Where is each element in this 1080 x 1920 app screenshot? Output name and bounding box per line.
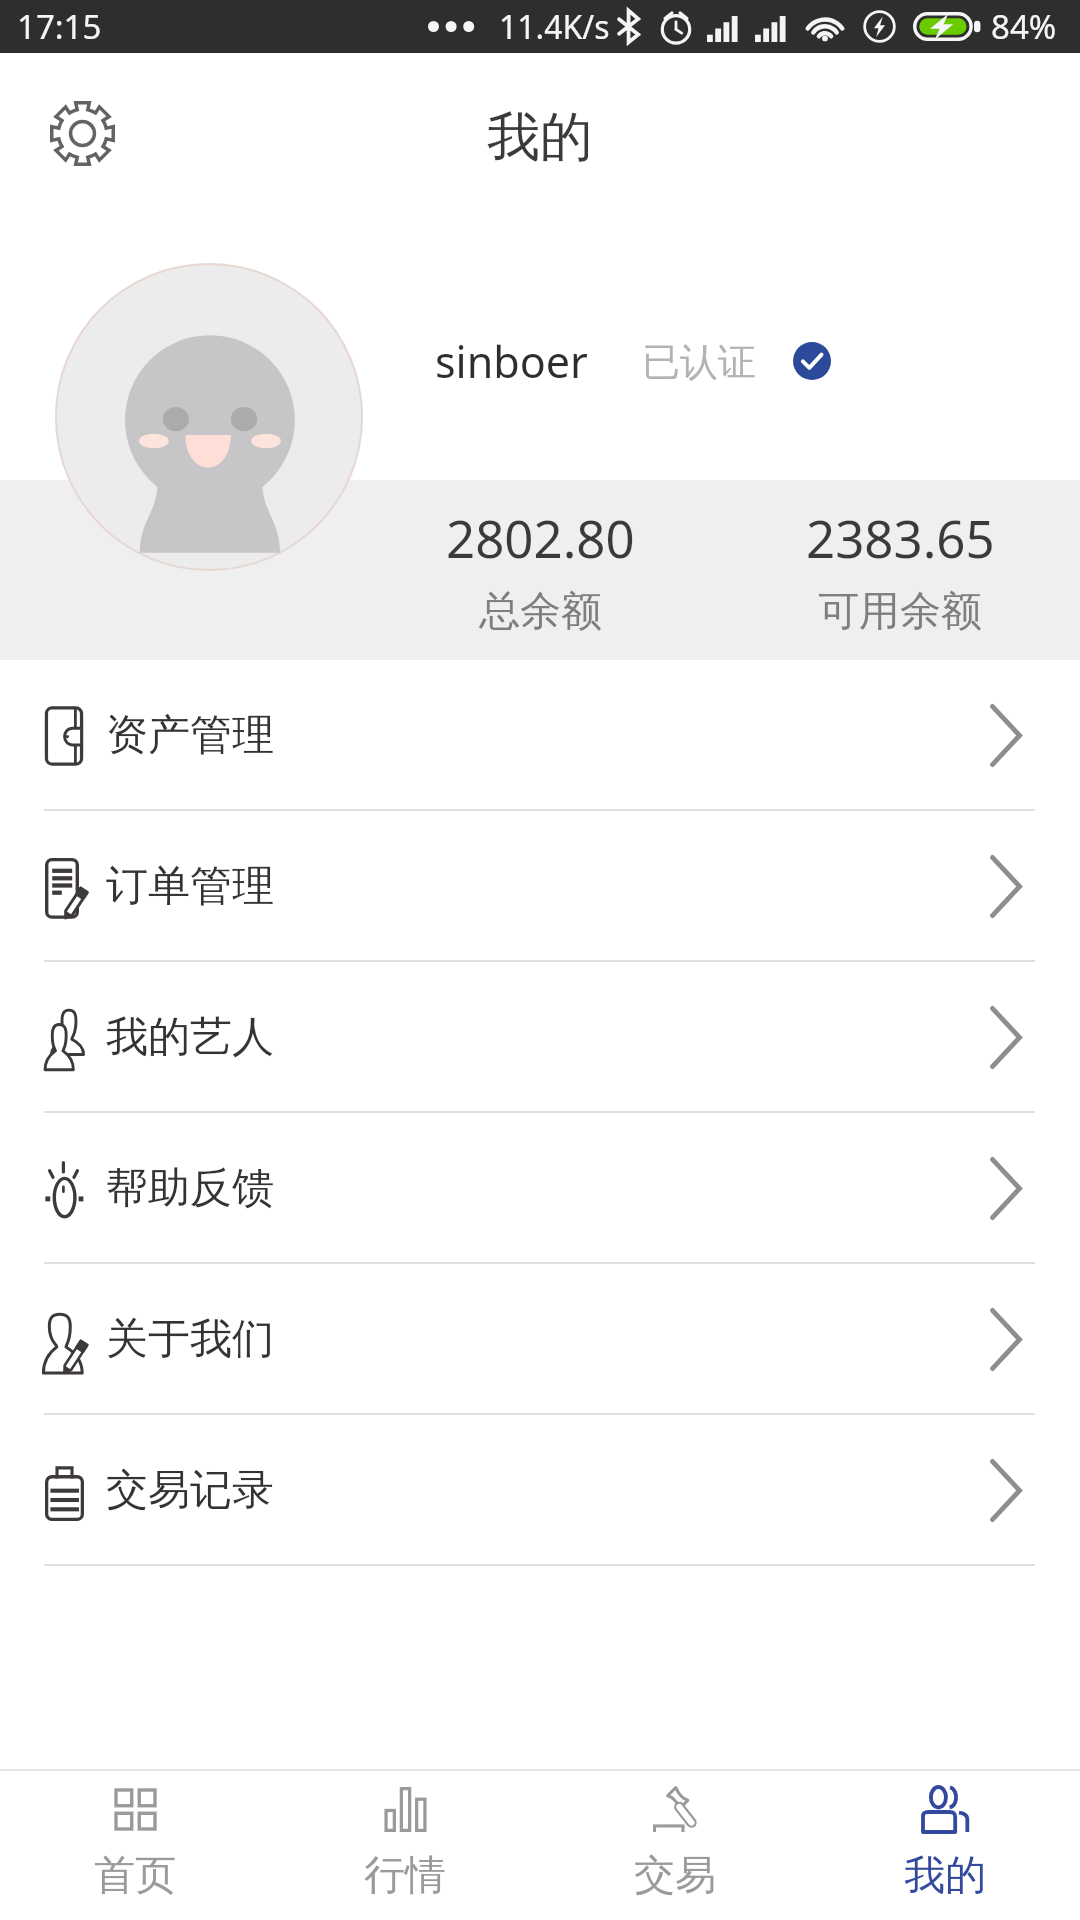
button[interactable]: 我的艺人	[0, 962, 1080, 1113]
button[interactable]: 行情	[270, 1771, 540, 1920]
staticText: sinboer	[435, 332, 588, 391]
staticText: 交易记录	[106, 1464, 274, 1517]
staticText: 总余额	[479, 586, 602, 638]
staticText: 资产管理	[106, 709, 274, 762]
button[interactable]: 资产管理	[0, 660, 1080, 811]
staticText: 84%	[991, 4, 1057, 49]
button[interactable]: 帮助反馈	[0, 1113, 1080, 1264]
button[interactable]: 我的	[810, 1771, 1080, 1920]
staticText: 17:15	[17, 4, 102, 49]
staticText: 11.4K/s	[499, 5, 610, 49]
button[interactable]: 关于我们	[0, 1264, 1080, 1415]
staticText: 2383.65	[806, 503, 995, 572]
staticText: 我的	[487, 104, 593, 171]
staticText: 已认证	[642, 338, 756, 386]
staticText: 帮助反馈	[106, 1162, 274, 1215]
button[interactable]: 订单管理	[0, 811, 1080, 962]
staticText: 首页	[94, 1850, 176, 1902]
button[interactable]: 交易	[540, 1771, 810, 1920]
staticText: 2802.80	[446, 503, 635, 572]
staticText: 交易	[634, 1850, 716, 1902]
button[interactable]: 首页	[0, 1771, 270, 1920]
staticText: 我的	[904, 1850, 986, 1902]
button[interactable]: Settings	[0, 51, 165, 215]
staticText: 我的艺人	[106, 1011, 274, 1064]
staticText: 行情	[364, 1850, 446, 1902]
staticText: 可用余额	[818, 586, 982, 638]
staticText: 关于我们	[106, 1313, 274, 1366]
button[interactable]: 交易记录	[0, 1415, 1080, 1566]
staticText: 订单管理	[106, 860, 274, 913]
